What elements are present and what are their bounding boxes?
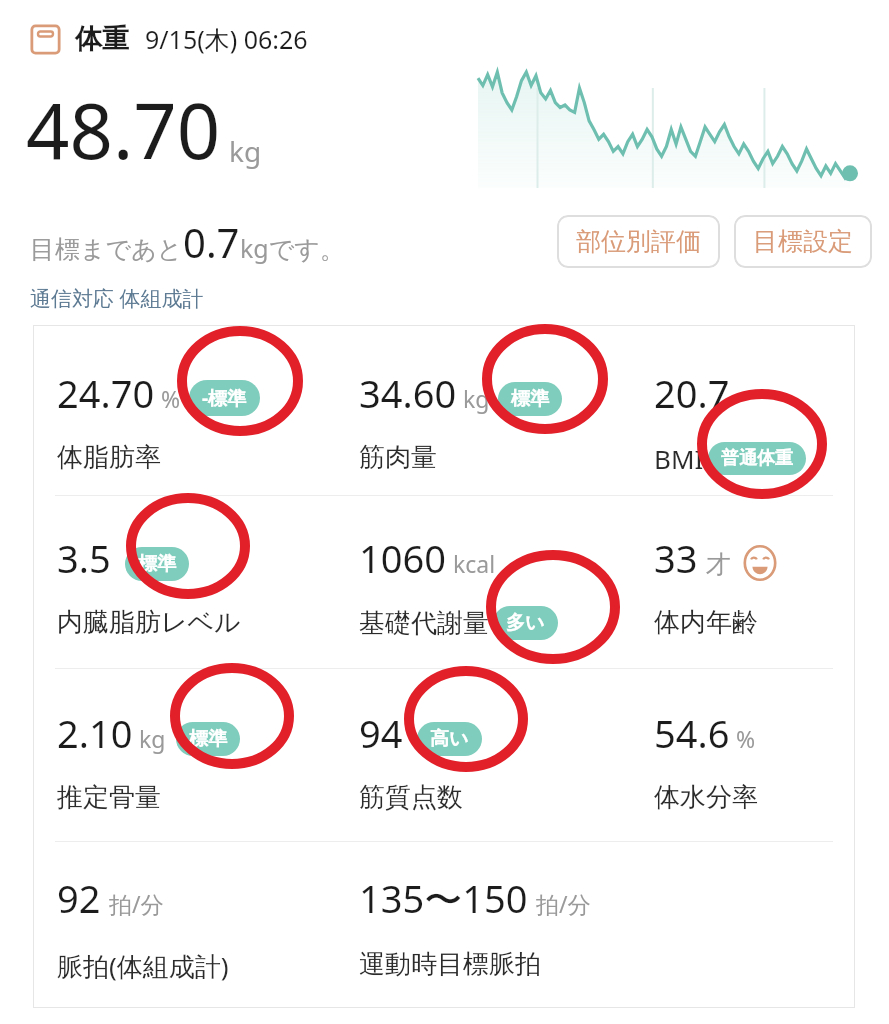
staticText: 体重 bbox=[75, 22, 129, 56]
staticText: 推定骨量 bbox=[57, 781, 161, 814]
staticText: 標準 bbox=[138, 552, 176, 576]
staticText: 34.60 bbox=[359, 367, 457, 419]
staticText: kg bbox=[229, 132, 262, 170]
staticText: 才 bbox=[706, 549, 731, 580]
staticText: 48.70 bbox=[26, 78, 221, 182]
button[interactable]: 標準 bbox=[125, 547, 189, 581]
staticText: 多い bbox=[506, 611, 545, 635]
staticText: 33 bbox=[654, 532, 698, 584]
staticText: 1060 bbox=[359, 532, 446, 584]
staticText: 54.6 bbox=[654, 707, 730, 759]
staticText: kcal bbox=[453, 548, 496, 579]
button[interactable]: 高い bbox=[417, 722, 482, 756]
staticText: 筋肉量 bbox=[359, 441, 437, 474]
button[interactable]: 標準 bbox=[498, 382, 562, 416]
button[interactable]: -標準 bbox=[189, 380, 260, 416]
staticText: 目標まであと bbox=[30, 234, 183, 265]
staticText: 0.7 bbox=[183, 215, 240, 269]
staticText: 通信対応 体組成計 bbox=[30, 284, 204, 313]
button[interactable]: 普通体重 bbox=[708, 442, 806, 475]
staticText: % bbox=[736, 723, 756, 754]
staticText: 目標設定 bbox=[753, 226, 853, 257]
staticText: 高い bbox=[430, 727, 469, 751]
staticText: 拍/分 bbox=[536, 888, 591, 919]
staticText: 部位別評価 bbox=[576, 226, 701, 257]
staticText: 標準 bbox=[189, 727, 227, 751]
staticText: 20.7 bbox=[654, 367, 730, 419]
staticText: 135〜150 bbox=[359, 872, 528, 924]
staticText: 9/15(木) 06:26 bbox=[145, 22, 308, 56]
staticText: kg bbox=[463, 383, 490, 414]
staticText: 内臓脂肪レベル bbox=[57, 606, 241, 639]
staticText: 普通体重 bbox=[721, 447, 793, 470]
button[interactable]: 標準 bbox=[176, 722, 240, 756]
staticText: 運動時目標脈拍 bbox=[359, 948, 541, 981]
staticText: 92 bbox=[57, 872, 101, 924]
staticText: kg bbox=[139, 723, 166, 754]
button[interactable]: 多い bbox=[493, 606, 558, 640]
staticText: 基礎代謝量 bbox=[359, 607, 489, 640]
staticText: 24.70 bbox=[57, 367, 155, 419]
staticText: 3.5 bbox=[57, 532, 111, 584]
staticText: 筋質点数 bbox=[359, 781, 463, 814]
staticText: 94 bbox=[359, 707, 403, 759]
button[interactable]: 部位別評価 bbox=[557, 215, 720, 268]
staticText: 体脂肪率 bbox=[57, 441, 161, 474]
staticText: 拍/分 bbox=[109, 888, 164, 919]
button[interactable]: 目標設定 bbox=[734, 215, 872, 268]
staticText: % bbox=[161, 383, 181, 414]
staticText: -標準 bbox=[202, 385, 247, 411]
staticText: 体内年齢 bbox=[654, 606, 758, 639]
staticText: 2.10 bbox=[57, 707, 133, 759]
staticText: BMI bbox=[654, 441, 704, 476]
staticText: 脈拍(体組成計) bbox=[57, 948, 229, 984]
staticText: 標準 bbox=[511, 387, 549, 411]
staticText: 体水分率 bbox=[654, 781, 758, 814]
staticText: kgです。 bbox=[240, 231, 345, 265]
